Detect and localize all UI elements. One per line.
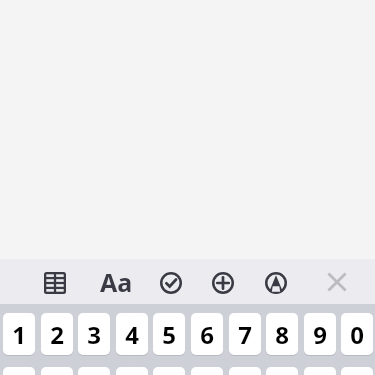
- button[interactable]: 8: [266, 313, 298, 355]
- button[interactable]: ): [191, 367, 223, 375]
- button[interactable]: 2: [41, 313, 73, 355]
- button[interactable]: 9: [304, 313, 336, 355]
- button[interactable]: -: [3, 367, 35, 375]
- staticText: Aa: [100, 265, 133, 299]
- staticText: 1: [12, 318, 26, 351]
- staticText: 4: [125, 318, 139, 351]
- button[interactable]: 4: [116, 313, 148, 355]
- button[interactable]: Insert table: [34, 262, 76, 304]
- button[interactable]: Close keyboard: [316, 261, 358, 303]
- button[interactable]: 3: [78, 313, 110, 355]
- button[interactable]: ": [341, 367, 373, 375]
- staticText: 8: [275, 318, 289, 351]
- button[interactable]: 0: [341, 313, 373, 355]
- staticText: 3: [87, 318, 101, 351]
- staticText: 7: [238, 318, 252, 351]
- button[interactable]: Text format: [95, 261, 137, 303]
- button[interactable]: $: [229, 367, 261, 375]
- button[interactable]: Checklist: [150, 262, 192, 304]
- button[interactable]: &: [266, 367, 298, 375]
- button[interactable]: /: [41, 367, 73, 375]
- button[interactable]: @: [304, 367, 336, 375]
- button[interactable]: ;: [116, 367, 148, 375]
- staticText: 5: [162, 318, 176, 351]
- staticText: 0: [350, 318, 364, 351]
- staticText: 9: [313, 318, 327, 351]
- button[interactable]: :: [78, 367, 110, 375]
- button[interactable]: 5: [153, 313, 185, 355]
- button[interactable]: 6: [191, 313, 223, 355]
- button[interactable]: Add attachment: [202, 262, 244, 304]
- staticText: 2: [50, 318, 64, 351]
- button[interactable]: (: [153, 367, 185, 375]
- staticText: 6: [200, 318, 214, 351]
- button[interactable]: 7: [229, 313, 261, 355]
- button[interactable]: 1: [3, 313, 35, 355]
- button[interactable]: Markup: [255, 262, 297, 304]
